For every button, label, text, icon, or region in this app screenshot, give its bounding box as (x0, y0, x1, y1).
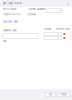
staticText: Add New Label (3, 20, 18, 23)
staticText: Policy Name (3, 8, 16, 11)
staticText: × (67, 2, 69, 6)
button[interactable]: Cancel (57, 92, 69, 97)
staticText: Retention Count (56, 28, 70, 30)
staticText: Edit Audit Policy (2, 2, 21, 5)
staticText: Schedule (44, 28, 51, 30)
button[interactable]: Add New Label (3, 20, 18, 23)
staticText: ▾ (60, 9, 61, 12)
button[interactable]: Remove row (63, 32, 66, 36)
staticText: Snapshot Label (3, 29, 17, 32)
staticText: Transfer Priority (3, 13, 20, 16)
staticText: Add (3, 40, 6, 42)
button[interactable]: OK (45, 92, 55, 97)
staticText: Cancel (60, 93, 67, 96)
button[interactable]: Close (66, 2, 70, 6)
staticText: OK (49, 93, 52, 96)
button[interactable]: Remove row (63, 36, 66, 40)
button[interactable]: Schedule (46, 8, 62, 13)
staticText: Normal (28, 13, 36, 16)
staticText: Current Schedule (28, 8, 45, 11)
